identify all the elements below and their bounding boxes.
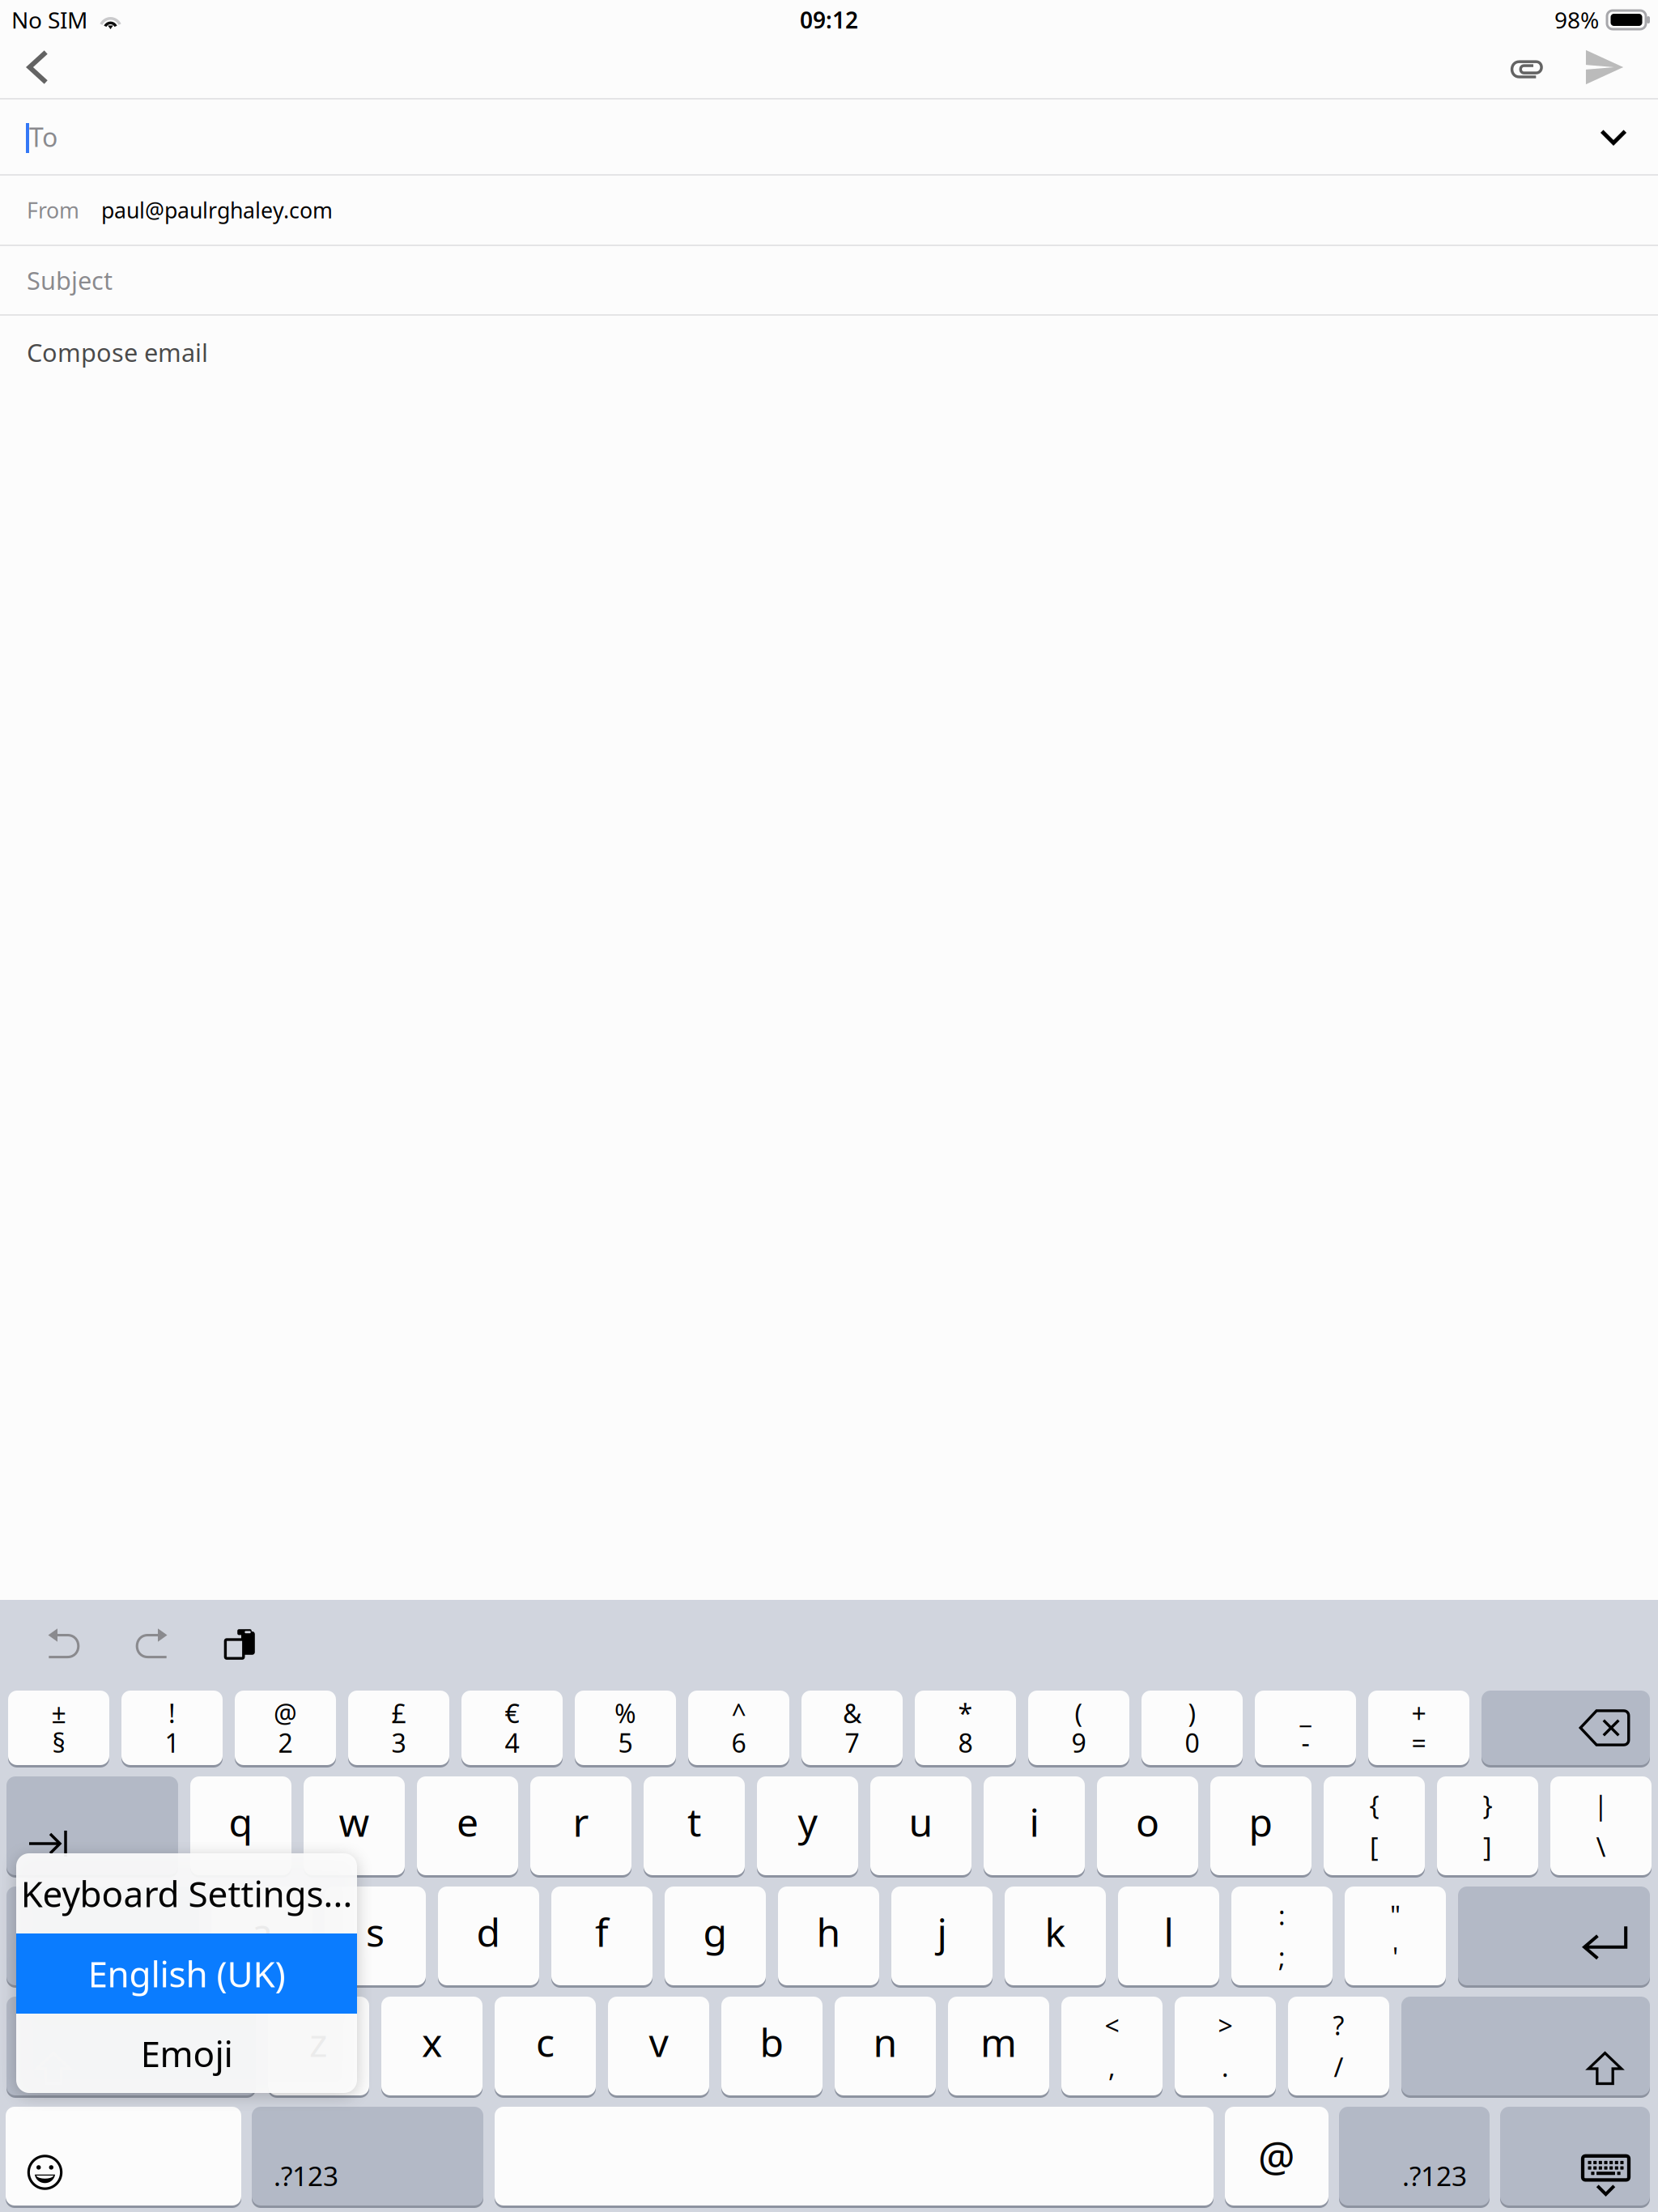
staticText: 8: [958, 1725, 973, 1760]
staticText: .: [1222, 2050, 1229, 2084]
button[interactable]: To: [0, 100, 1658, 174]
button[interactable]: period: [1175, 1997, 1276, 2095]
button[interactable]: y: [757, 1776, 858, 1875]
staticText: @: [1258, 2129, 1295, 2183]
staticText: p: [1249, 1796, 1273, 1847]
button[interactable]: p: [1210, 1776, 1312, 1875]
button[interactable]: Emoji: [6, 2107, 241, 2206]
button[interactable]: Return: [1458, 1887, 1650, 1985]
button[interactable]: bracket: [1437, 1776, 1538, 1875]
button[interactable]: Emoji: [16, 2014, 357, 2093]
staticText: l: [1164, 1906, 1173, 1958]
button[interactable]: x: [381, 1997, 483, 2095]
staticText: ;: [1278, 1940, 1286, 1974]
staticText: v: [649, 2016, 668, 2068]
button[interactable]: Keyboard Settings...: [16, 1853, 357, 1933]
button[interactable]: Subject: [0, 246, 1658, 314]
button[interactable]: 1: [121, 1691, 223, 1765]
button[interactable]: Hide keyboard: [1500, 2107, 1650, 2206]
staticText: t: [687, 1796, 701, 1847]
button[interactable]: Attach file: [1495, 48, 1557, 91]
button[interactable]: 9: [1028, 1691, 1129, 1765]
staticText: Compose email: [27, 336, 208, 369]
button[interactable]: .?123: [252, 2107, 483, 2206]
staticText: {: [1369, 1788, 1379, 1822]
staticText: k: [1045, 1906, 1066, 1958]
staticText: 98%: [1554, 5, 1599, 35]
button[interactable]: Paste: [212, 1616, 267, 1673]
button[interactable]: h: [778, 1887, 879, 1985]
button[interactable]: w: [304, 1776, 405, 1875]
button[interactable]: comma: [1061, 1997, 1163, 2095]
button[interactable]: n: [835, 1997, 936, 2095]
button[interactable]: slash: [1288, 1997, 1389, 2095]
button[interactable]: at sign: [1225, 2107, 1329, 2206]
button[interactable]: Caps Lock: [6, 1887, 199, 1985]
button[interactable]: 5: [575, 1691, 676, 1765]
staticText: ±: [51, 1696, 66, 1730]
button[interactable]: d: [438, 1887, 539, 1985]
button[interactable]: i: [984, 1776, 1085, 1875]
staticText: z: [309, 2016, 328, 2068]
button[interactable]: 8: [915, 1691, 1016, 1765]
button[interactable]: s: [325, 1887, 426, 1985]
staticText: x: [422, 2016, 442, 2068]
staticText: -: [1301, 1725, 1309, 1760]
button[interactable]: From: [0, 176, 1658, 245]
button[interactable]: equals: [1368, 1691, 1469, 1765]
button[interactable]: l: [1118, 1887, 1219, 1985]
button[interactable]: Undo: [37, 1616, 92, 1673]
button[interactable]: Redo: [123, 1616, 178, 1673]
button[interactable]: g: [665, 1887, 766, 1985]
button[interactable]: k: [1005, 1887, 1106, 1985]
button[interactable]: v: [608, 1997, 709, 2095]
button[interactable]: Delete: [1482, 1691, 1650, 1765]
button[interactable]: a: [211, 1887, 312, 1985]
button[interactable]: backslash: [1550, 1776, 1652, 1875]
button[interactable]: Shift: [6, 1997, 256, 2095]
button[interactable]: Back: [7, 47, 69, 87]
staticText: o: [1136, 1796, 1159, 1847]
staticText: ': [1392, 1940, 1398, 1974]
staticText: *: [958, 1696, 973, 1730]
button[interactable]: bracket: [1324, 1776, 1425, 1875]
button[interactable]: hyphen: [1255, 1691, 1356, 1765]
button[interactable]: b: [721, 1997, 823, 2095]
button[interactable]: e: [417, 1776, 518, 1875]
button[interactable]: t: [644, 1776, 745, 1875]
staticText: 2: [278, 1725, 293, 1760]
button[interactable]: 4: [461, 1691, 563, 1765]
staticText: a: [251, 1906, 273, 1958]
button[interactable]: c: [495, 1997, 596, 2095]
button[interactable]: r: [530, 1776, 631, 1875]
button[interactable]: section: [8, 1691, 109, 1765]
button[interactable]: z: [268, 1997, 369, 2095]
button[interactable]: Send: [1574, 45, 1635, 89]
button[interactable]: Tab: [6, 1776, 178, 1875]
button[interactable]: m: [948, 1997, 1049, 2095]
staticText: 5: [618, 1725, 633, 1760]
button[interactable]: 0: [1141, 1691, 1243, 1765]
button[interactable]: 6: [688, 1691, 789, 1765]
button[interactable]: semicolon: [1231, 1887, 1333, 1985]
button[interactable]: j: [891, 1887, 993, 1985]
button[interactable]: quote: [1345, 1887, 1446, 1985]
button[interactable]: .?123: [1339, 2107, 1490, 2206]
staticText: j: [937, 1906, 947, 1958]
button[interactable]: 7: [801, 1691, 903, 1765]
button[interactable]: f: [551, 1887, 653, 1985]
staticText: <: [1105, 2008, 1119, 2042]
button[interactable]: o: [1097, 1776, 1198, 1875]
staticText: ,: [1108, 2050, 1116, 2084]
button[interactable]: u: [870, 1776, 971, 1875]
staticText: .?123: [1402, 2158, 1467, 2194]
staticText: q: [229, 1796, 253, 1847]
staticText: !: [168, 1696, 176, 1730]
button[interactable]: q: [190, 1776, 291, 1875]
button[interactable]: 2: [235, 1691, 336, 1765]
button[interactable]: English (UK): [16, 1933, 357, 2014]
button[interactable]: 3: [348, 1691, 449, 1765]
button[interactable]: Shift: [1401, 1997, 1650, 2095]
staticText: f: [595, 1906, 609, 1958]
